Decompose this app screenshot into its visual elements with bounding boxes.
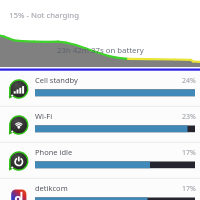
staticText: 24% [182,76,196,86]
button[interactable]: Wi-Fi [0,107,200,143]
staticText: 15% - Not charging [9,10,79,21]
staticText: Phone idle [35,147,73,157]
button[interactable]: Cell standby [0,71,200,107]
staticText: 17% [182,148,196,158]
staticText: 17% [182,184,196,194]
staticText: Cell standby [35,75,78,85]
button[interactable]: detikcom [0,179,200,200]
staticText: detikcom [35,183,68,193]
staticText: 23h 42m 37s on battery [57,45,144,56]
button[interactable]: Phone idle [0,143,200,179]
staticText: Wi-Fi [35,111,53,121]
staticText: 23% [182,112,196,122]
